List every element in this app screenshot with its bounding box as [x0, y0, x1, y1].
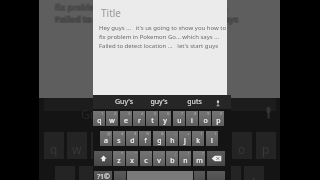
staticText: j — [205, 175, 209, 180]
staticText: + — [187, 131, 190, 136]
staticText: @ — [107, 131, 111, 136]
button[interactable]: 8 — [186, 111, 198, 126]
staticText: f — [144, 136, 147, 146]
button[interactable]: % — [139, 131, 151, 146]
button[interactable]: ! — [179, 151, 191, 166]
staticText: m — [196, 156, 203, 166]
button[interactable]: - — [166, 131, 178, 146]
staticText: y — [169, 141, 176, 157]
button[interactable]: 5 — [146, 111, 158, 126]
staticText: r — [138, 116, 141, 126]
staticText: s — [117, 136, 121, 146]
button[interactable]: 7 — [173, 111, 185, 126]
staticText: k — [228, 175, 235, 180]
staticText: x — [130, 156, 134, 166]
staticText: ; — [175, 151, 177, 156]
staticText: 2 — [114, 111, 117, 116]
staticText: % — [146, 131, 150, 136]
staticText: i — [191, 116, 193, 126]
staticText: ? — [202, 151, 204, 156]
button[interactable]: 6 — [159, 111, 171, 126]
button[interactable]: Backspace — [207, 151, 225, 166]
button[interactable]: 0 — [212, 111, 224, 126]
staticText: z — [117, 156, 121, 166]
staticText: o — [238, 141, 246, 157]
staticText: Failed to detect location ... let's star… — [54, 14, 238, 26]
button[interactable]: Enter — [207, 171, 225, 180]
button[interactable]: " — [126, 151, 138, 166]
staticText: u — [191, 141, 199, 157]
staticText: r — [122, 141, 127, 157]
staticText: - — [175, 131, 177, 136]
button[interactable]: ) — [206, 131, 218, 146]
button[interactable]: Period — [194, 171, 205, 180]
staticText: e — [98, 141, 105, 157]
staticText: i — [217, 141, 221, 157]
staticText: t — [151, 116, 154, 126]
button[interactable]: Voice input — [212, 97, 224, 109]
button[interactable]: $ — [126, 131, 138, 146]
staticText: fix problem in Pokemon Go... which says … — [56, 1, 229, 12]
button[interactable]: Guy's — [108, 95, 140, 109]
button[interactable]: guts — [178, 95, 210, 109]
button[interactable]: 9 — [199, 111, 211, 126]
staticText: g — [157, 136, 162, 146]
staticText: v — [157, 156, 161, 166]
staticText: t — [146, 141, 151, 157]
staticText: c — [144, 156, 148, 166]
button[interactable]: Symbols — [94, 171, 112, 180]
button[interactable]: ; — [166, 151, 178, 166]
staticText: d — [109, 175, 117, 180]
staticText: ! — [188, 151, 190, 156]
staticText: 0 — [220, 111, 223, 116]
staticText: # — [121, 131, 124, 136]
button[interactable]: & — [153, 131, 165, 146]
staticText: guts — [203, 106, 228, 122]
staticText: q — [97, 116, 102, 126]
button[interactable]: Shift — [94, 151, 112, 166]
button[interactable]: guy's — [143, 95, 175, 109]
button[interactable]: ? — [193, 151, 205, 166]
staticText: ( — [201, 131, 203, 136]
staticText: o — [203, 116, 208, 126]
staticText: h — [170, 136, 175, 146]
button[interactable]: @ — [100, 131, 112, 146]
staticText: ?1© — [97, 172, 110, 180]
button[interactable]: + — [179, 131, 191, 146]
button[interactable]: ( — [192, 131, 204, 146]
staticText: fix problem in Pokemon Go... which says … — [54, 2, 227, 13]
button[interactable]: 4 — [133, 111, 145, 126]
button[interactable]: # — [113, 131, 125, 146]
staticText: y — [163, 116, 167, 126]
button[interactable]: 1 — [93, 111, 105, 126]
staticText: Guy's — [81, 106, 112, 122]
staticText: Failed to detect location ... let's star… — [99, 42, 219, 50]
staticText: w — [72, 141, 82, 157]
staticText: fix problem in Pokemon Go... which says … — [54, 1, 227, 12]
staticText: 6 — [167, 111, 170, 116]
button[interactable]: Comma — [114, 171, 126, 180]
staticText: j — [184, 136, 186, 146]
staticText: : — [162, 151, 164, 156]
staticText: 1 — [101, 111, 104, 116]
button[interactable]: ' — [140, 151, 152, 166]
staticText: Title — [101, 6, 121, 20]
button[interactable]: 3 — [120, 111, 132, 126]
button[interactable]: : — [153, 151, 165, 166]
button[interactable]: 2 — [106, 111, 118, 126]
staticText: Failed to detect location ... let's star… — [55, 14, 239, 26]
staticText: fix problem in Pokemon Go... which says … — [55, 1, 228, 12]
staticText: ) — [215, 131, 217, 136]
staticText: l — [252, 175, 256, 180]
staticText: 7 — [181, 111, 184, 116]
staticText: u — [177, 116, 182, 126]
staticText: fix problem in Pokemon Go... which says … — [54, 2, 227, 13]
staticText: fix problem in Pokemon Go... which says … — [56, 2, 229, 13]
staticText: guts — [187, 97, 202, 107]
staticText: & — [161, 131, 164, 136]
button[interactable]: * — [113, 151, 125, 166]
